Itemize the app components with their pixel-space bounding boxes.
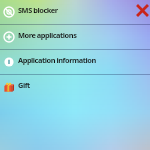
staticText: Application information [18,55,96,65]
staticText: Gift [18,80,30,90]
button[interactable]: Gift [0,75,150,99]
staticText: More applications [18,30,77,40]
button[interactable]: SMS blocker [0,0,150,24]
button[interactable]: Close [135,3,150,18]
staticText: SMS blocker [18,5,58,15]
button[interactable]: Application information [0,50,150,74]
button[interactable]: More applications [0,25,150,49]
